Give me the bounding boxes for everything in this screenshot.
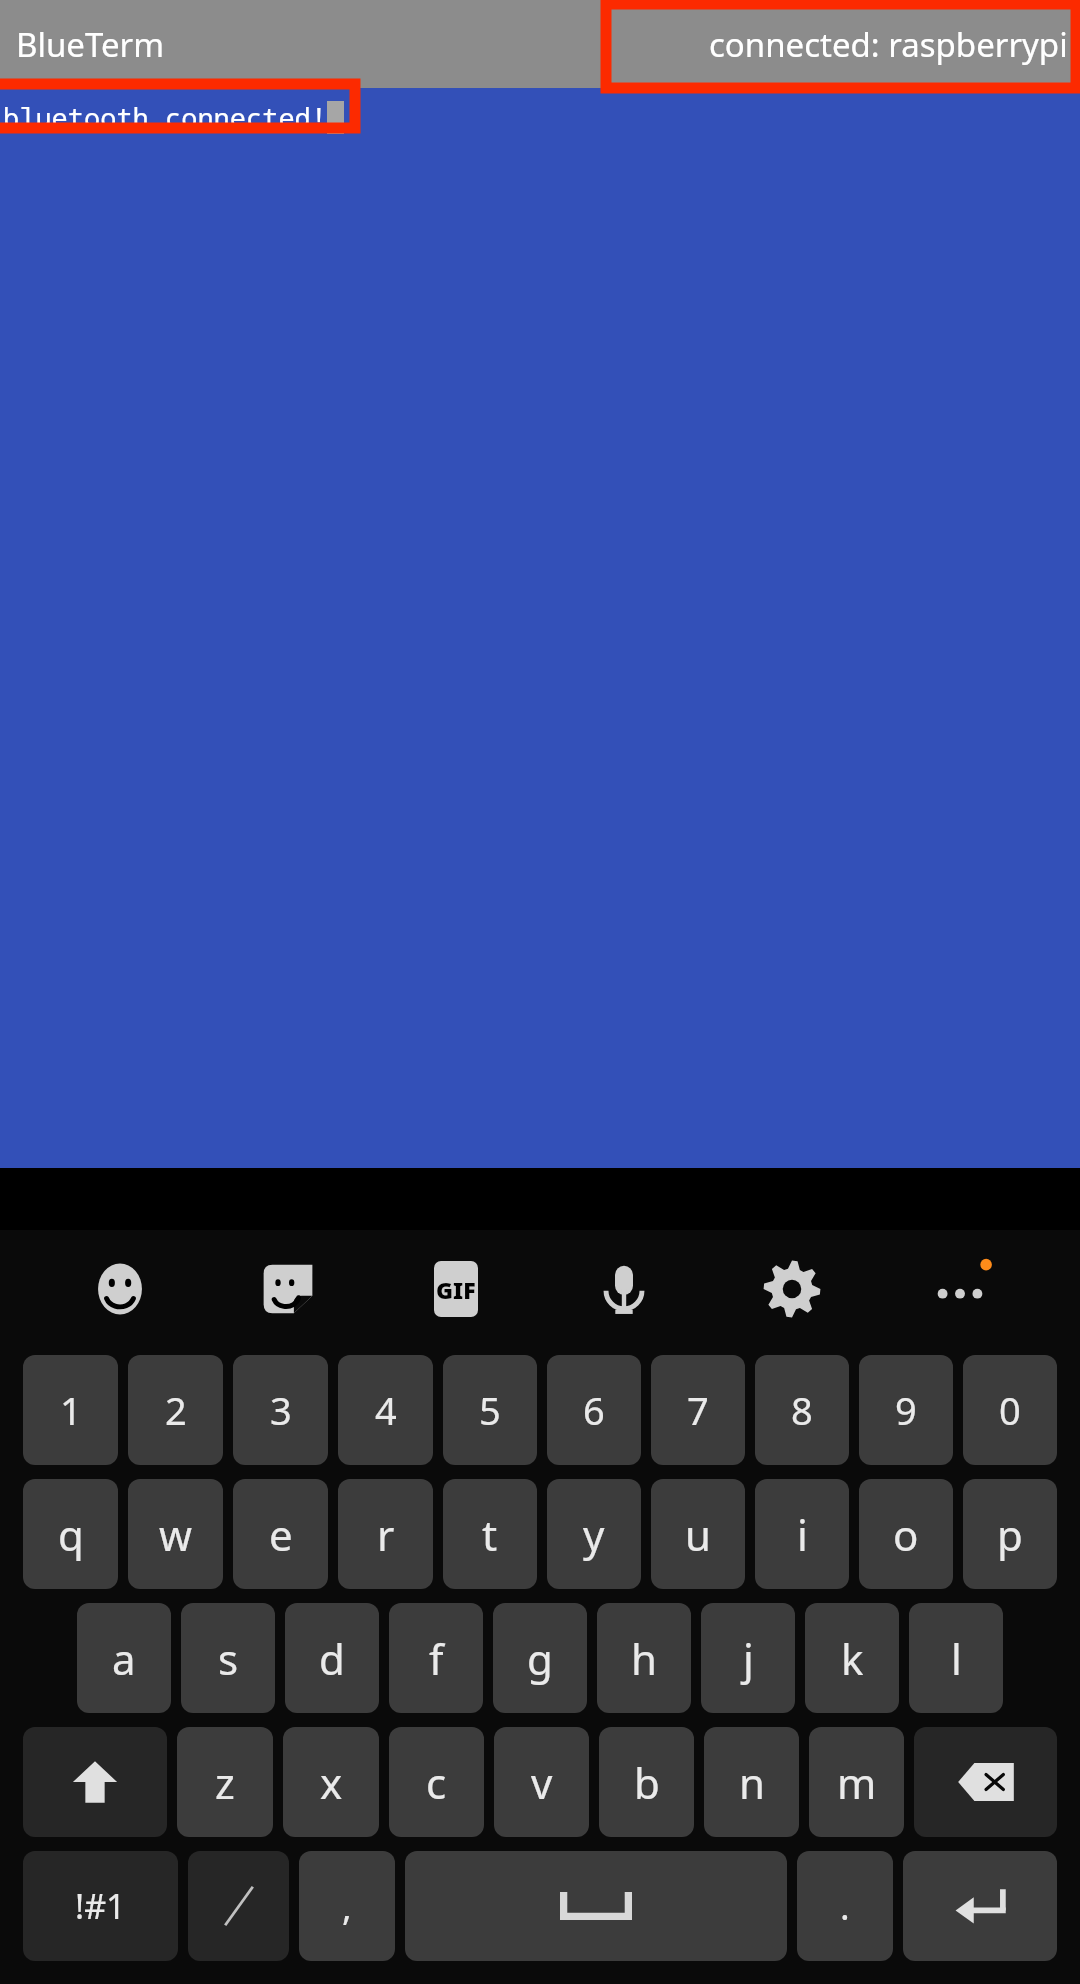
staticText: i bbox=[797, 1506, 808, 1563]
button[interactable]: n bbox=[704, 1727, 799, 1837]
button[interactable]: 7 bbox=[651, 1355, 745, 1465]
staticText: e bbox=[269, 1506, 293, 1563]
button[interactable]: Stickers bbox=[204, 1230, 372, 1348]
staticText: p bbox=[997, 1506, 1023, 1563]
button[interactable]: j bbox=[701, 1603, 795, 1713]
staticText: g bbox=[527, 1630, 553, 1687]
button[interactable]: , bbox=[299, 1851, 395, 1961]
staticText: 7 bbox=[687, 1384, 709, 1436]
button[interactable]: !#1 bbox=[23, 1851, 178, 1961]
staticText: , bbox=[342, 1882, 352, 1931]
button[interactable]: 4 bbox=[338, 1355, 433, 1465]
staticText: 6 bbox=[583, 1384, 605, 1436]
staticText: u bbox=[685, 1506, 711, 1563]
button[interactable]: 8 bbox=[755, 1355, 849, 1465]
staticText: s bbox=[218, 1630, 239, 1687]
staticText: m bbox=[837, 1754, 877, 1811]
button[interactable]: 5 bbox=[443, 1355, 537, 1465]
staticText: t bbox=[482, 1506, 498, 1563]
staticText: o bbox=[893, 1506, 919, 1563]
staticText: 1 bbox=[60, 1384, 82, 1436]
button[interactable]: 9 bbox=[859, 1355, 953, 1465]
staticText: 4 bbox=[375, 1384, 397, 1436]
button[interactable]: 6 bbox=[547, 1355, 641, 1465]
button[interactable]: k bbox=[805, 1603, 899, 1713]
staticText: bluetooth connected! bbox=[3, 99, 327, 136]
staticText: !#1 bbox=[75, 1883, 126, 1929]
staticText: l bbox=[951, 1630, 962, 1687]
staticText: c bbox=[426, 1754, 447, 1811]
button[interactable]: Emoji bbox=[36, 1230, 204, 1348]
button[interactable]: p bbox=[963, 1479, 1057, 1589]
staticText: 2 bbox=[165, 1384, 187, 1436]
staticText: d bbox=[319, 1630, 345, 1687]
button[interactable]: a bbox=[77, 1603, 171, 1713]
button[interactable]: connected: raspberrypi bbox=[709, 22, 1068, 67]
button[interactable]: o bbox=[859, 1479, 953, 1589]
button[interactable]: 2 bbox=[128, 1355, 223, 1465]
button[interactable]: r bbox=[338, 1479, 433, 1589]
staticText: w bbox=[159, 1506, 193, 1563]
button[interactable]: u bbox=[651, 1479, 745, 1589]
button[interactable]: l bbox=[909, 1603, 1003, 1713]
staticText: 8 bbox=[791, 1384, 813, 1436]
staticText: . bbox=[840, 1882, 850, 1931]
button[interactable]: Voice input bbox=[540, 1230, 708, 1348]
button[interactable]: d bbox=[285, 1603, 379, 1713]
button[interactable]: w bbox=[128, 1479, 223, 1589]
staticText: b bbox=[634, 1754, 660, 1811]
button[interactable]: x bbox=[283, 1727, 379, 1837]
staticText: k bbox=[841, 1630, 864, 1687]
staticText: x bbox=[320, 1754, 343, 1811]
button[interactable]: Enter bbox=[903, 1851, 1057, 1961]
button[interactable]: Space bbox=[405, 1851, 787, 1961]
button[interactable]: g bbox=[493, 1603, 587, 1713]
staticText: f bbox=[429, 1630, 444, 1687]
button[interactable]: b bbox=[599, 1727, 694, 1837]
staticText: connected: raspberrypi bbox=[709, 22, 1068, 67]
button[interactable]: q bbox=[23, 1479, 118, 1589]
staticText: 0 bbox=[999, 1384, 1021, 1436]
staticText: a bbox=[112, 1630, 136, 1687]
staticText: GIF bbox=[436, 1274, 476, 1305]
button[interactable]: f bbox=[389, 1603, 483, 1713]
button[interactable]: More options bbox=[876, 1230, 1044, 1348]
button[interactable]: 1 bbox=[23, 1355, 118, 1465]
button[interactable]: m bbox=[809, 1727, 904, 1837]
staticText: 9 bbox=[895, 1384, 917, 1436]
button[interactable]: c bbox=[389, 1727, 484, 1837]
button[interactable]: z bbox=[177, 1727, 273, 1837]
button[interactable]: GIF bbox=[372, 1230, 540, 1348]
button[interactable]: v bbox=[494, 1727, 589, 1837]
staticText: n bbox=[739, 1754, 765, 1811]
button[interactable]: 3 bbox=[233, 1355, 328, 1465]
button[interactable]: y bbox=[547, 1479, 641, 1589]
button[interactable]: i bbox=[755, 1479, 849, 1589]
button[interactable]: 0 bbox=[963, 1355, 1057, 1465]
staticText: 5 bbox=[479, 1384, 501, 1436]
staticText: r bbox=[377, 1506, 395, 1563]
button[interactable]: Settings bbox=[708, 1230, 876, 1348]
button[interactable]: . bbox=[797, 1851, 893, 1961]
button[interactable]: s bbox=[181, 1603, 275, 1713]
button[interactable]: Backspace bbox=[914, 1727, 1057, 1837]
staticText: v bbox=[531, 1754, 553, 1811]
button[interactable]: e bbox=[233, 1479, 328, 1589]
button[interactable]: Change language bbox=[188, 1851, 289, 1961]
staticText: BlueTerm bbox=[16, 22, 165, 67]
staticText: z bbox=[215, 1754, 235, 1811]
button[interactable]: Shift bbox=[23, 1727, 167, 1837]
staticText: h bbox=[631, 1630, 657, 1687]
button[interactable]: t bbox=[443, 1479, 537, 1589]
staticText: j bbox=[743, 1630, 754, 1687]
button[interactable]: h bbox=[597, 1603, 691, 1713]
staticText: q bbox=[58, 1506, 84, 1563]
staticText: 3 bbox=[270, 1384, 292, 1436]
staticText: y bbox=[583, 1506, 605, 1563]
